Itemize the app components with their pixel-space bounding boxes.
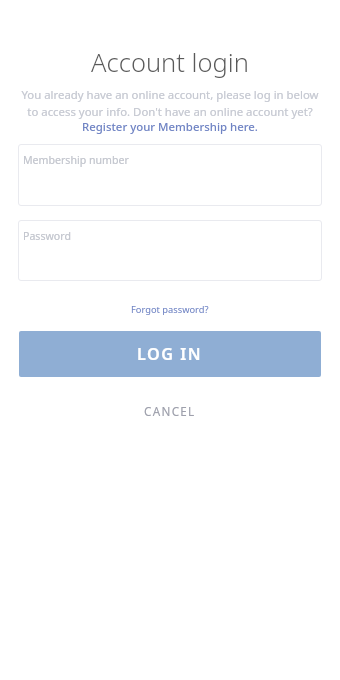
button[interactable]: Forgot password? [123, 299, 217, 320]
staticText: You already have an online account, plea… [0, 87, 340, 119]
button[interactable]: Register your Membership here. [0, 119, 340, 135]
button[interactable]: LOG IN [19, 331, 321, 377]
button[interactable]: Password [18, 220, 322, 281]
button[interactable]: CANCEL [134, 398, 206, 424]
staticText: Account login [0, 45, 340, 80]
staticText: Password [23, 229, 71, 243]
button[interactable]: Membership number [18, 144, 322, 206]
staticText: Membership number [23, 153, 129, 167]
staticText: LOG IN [137, 343, 203, 365]
